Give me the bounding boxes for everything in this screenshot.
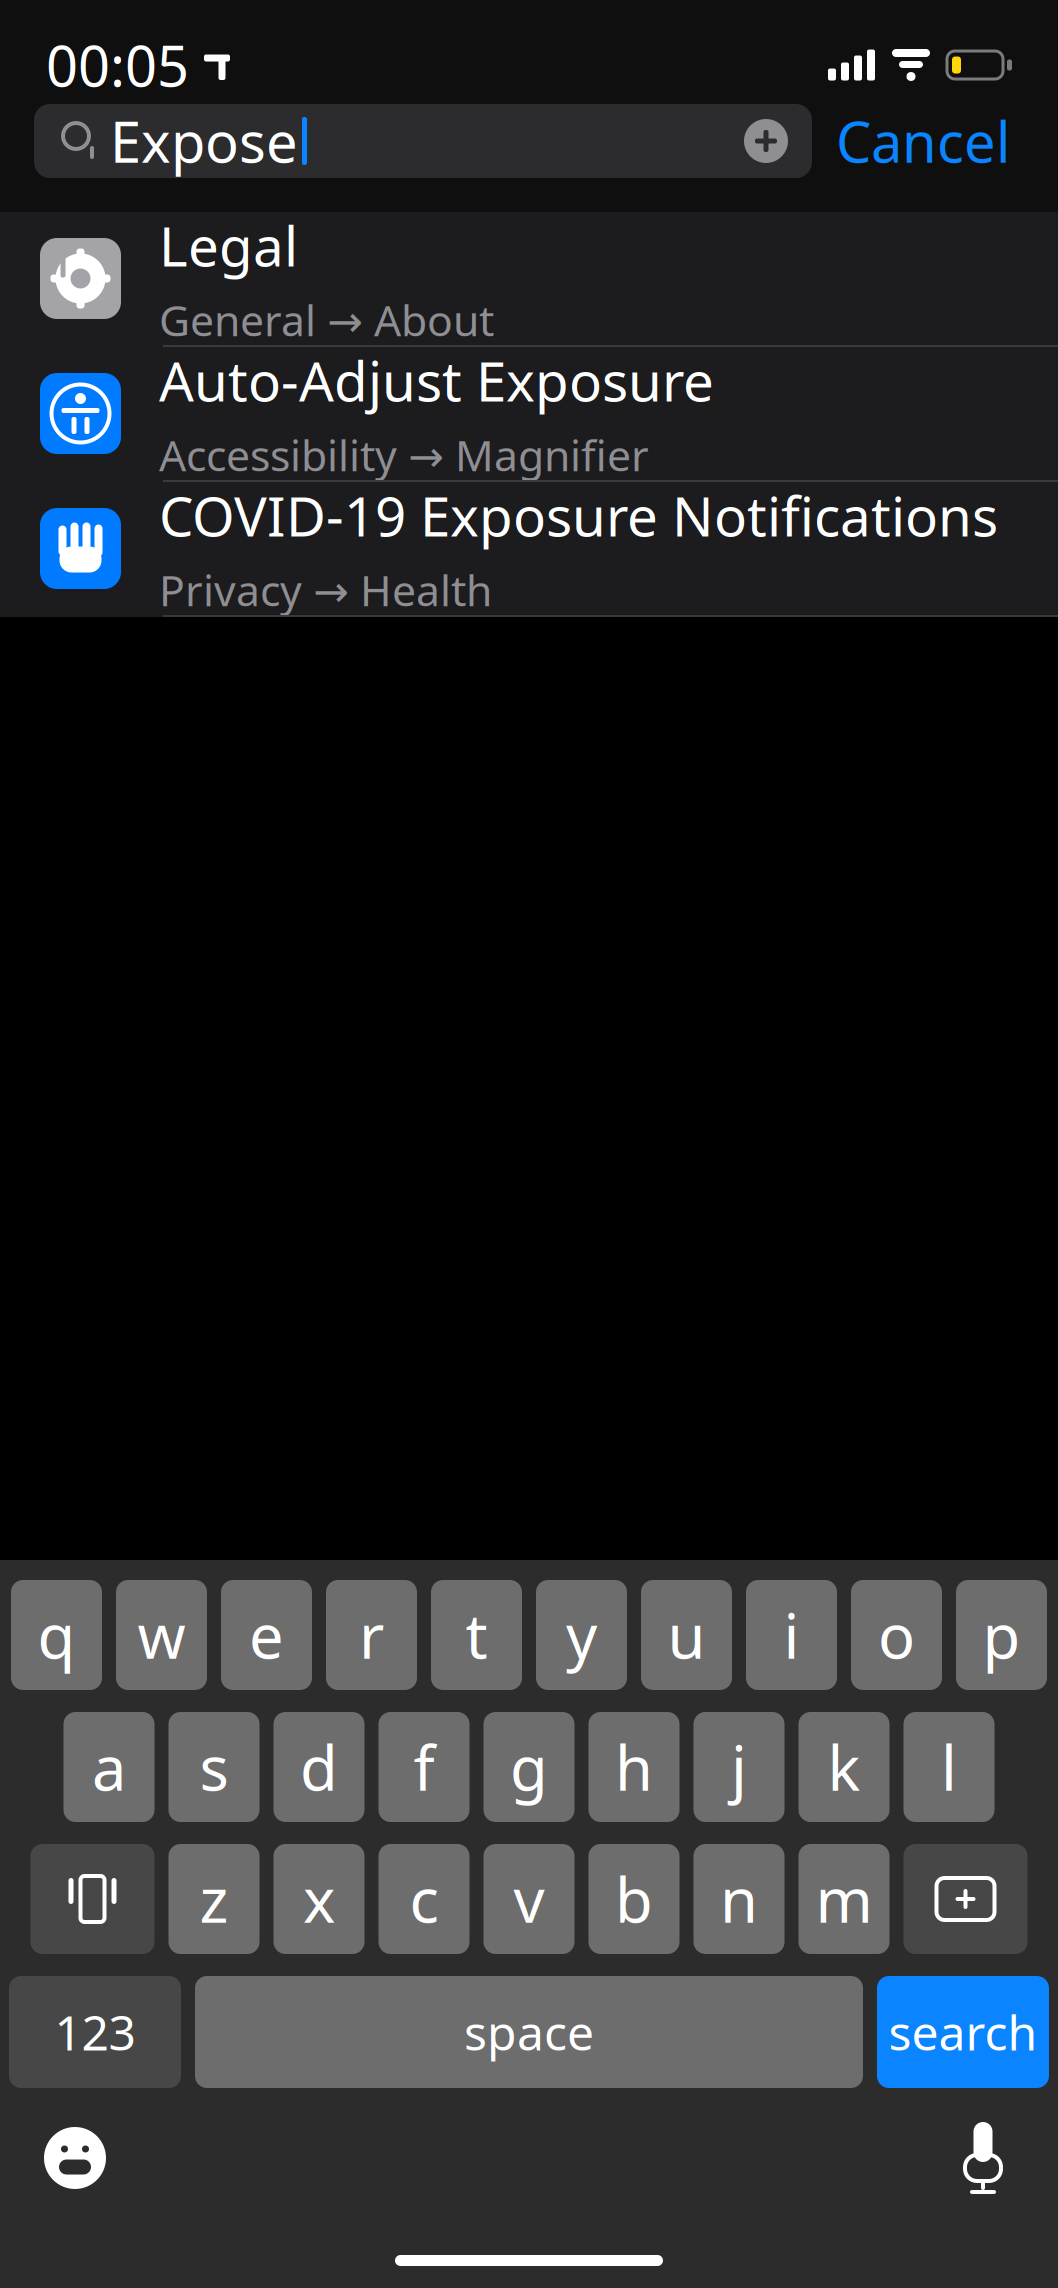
button[interactable]: i (746, 1580, 837, 1690)
button[interactable]: x (273, 1844, 364, 1954)
staticText: Accessibility → Magnifier (159, 426, 649, 483)
button[interactable]: o (851, 1580, 942, 1690)
button[interactable]: Legal (0, 212, 1058, 347)
button[interactable]: b (588, 1844, 679, 1954)
staticText: w (137, 1594, 185, 1676)
staticText: y (566, 1594, 597, 1676)
button[interactable]: c (378, 1844, 469, 1954)
button[interactable]: p (956, 1580, 1047, 1690)
button[interactable]: s (168, 1712, 259, 1822)
staticText: h (615, 1726, 653, 1808)
staticText: q (37, 1594, 75, 1676)
button[interactable]: n (693, 1844, 784, 1954)
staticText: x (303, 1858, 335, 1940)
button[interactable]: y (536, 1580, 627, 1690)
staticText: r (359, 1594, 384, 1676)
button[interactable]: Emoji keyboard (20, 2108, 130, 2208)
button[interactable]: v (483, 1844, 574, 1954)
staticText: g (510, 1726, 548, 1808)
staticText: b (615, 1858, 653, 1940)
staticText: 123 (54, 2000, 135, 2064)
button[interactable]: g (483, 1712, 574, 1822)
staticText: p (982, 1594, 1020, 1676)
staticText: t (465, 1594, 487, 1676)
button[interactable]: Expose (34, 104, 812, 178)
staticText: k (827, 1726, 860, 1808)
button[interactable]: u (641, 1580, 732, 1690)
button[interactable]: e (221, 1580, 312, 1690)
staticText: z (199, 1858, 228, 1940)
button[interactable]: j (693, 1712, 784, 1822)
button[interactable]: t (431, 1580, 522, 1690)
staticText: e (249, 1594, 284, 1676)
staticText: m (815, 1858, 872, 1940)
button[interactable]: k (798, 1712, 889, 1822)
staticText: v (513, 1858, 544, 1940)
staticText: l (941, 1726, 957, 1808)
staticText: d (300, 1726, 338, 1808)
button[interactable]: r (326, 1580, 417, 1690)
button[interactable]: d (273, 1712, 364, 1822)
staticText: f (413, 1726, 434, 1808)
button[interactable]: 123 (9, 1976, 181, 2088)
staticText: c (409, 1858, 438, 1940)
button[interactable]: z (168, 1844, 259, 1954)
button[interactable]: f (378, 1712, 469, 1822)
staticText: Legal (159, 209, 298, 281)
button[interactable]: COVID-19 Exposure Notifications (0, 482, 1058, 617)
staticText: search (888, 2000, 1037, 2064)
staticText: space (464, 2000, 594, 2064)
button[interactable]: q (11, 1580, 102, 1690)
staticText: COVID-19 Exposure Notifications (159, 479, 998, 551)
staticText: a (92, 1726, 126, 1808)
staticText: Expose (110, 104, 298, 178)
button[interactable]: h (588, 1712, 679, 1822)
staticText: n (720, 1858, 758, 1940)
button[interactable]: l (903, 1712, 994, 1822)
button[interactable]: Cancel (812, 104, 1034, 178)
staticText: s (199, 1726, 228, 1808)
staticText: Auto-Adjust Exposure (159, 344, 714, 416)
button[interactable]: Dictation (928, 2108, 1038, 2208)
staticText: j (731, 1726, 747, 1808)
staticText: i (783, 1594, 799, 1676)
button[interactable]: m (798, 1844, 889, 1954)
button[interactable]: Delete (903, 1844, 1027, 1954)
staticText: u (667, 1594, 705, 1676)
staticText: Cancel (836, 104, 1010, 178)
button[interactable]: Auto-Adjust Exposure (0, 347, 1058, 482)
button[interactable]: search (877, 1976, 1049, 2088)
button[interactable]: w (116, 1580, 207, 1690)
staticText: Privacy → Health (159, 561, 492, 618)
staticText: o (878, 1594, 915, 1676)
button[interactable]: Shift (30, 1844, 154, 1954)
button[interactable]: a (63, 1712, 154, 1822)
button[interactable]: space (195, 1976, 863, 2088)
staticText: 00:05 (46, 28, 189, 102)
staticText: General → About (159, 291, 494, 348)
